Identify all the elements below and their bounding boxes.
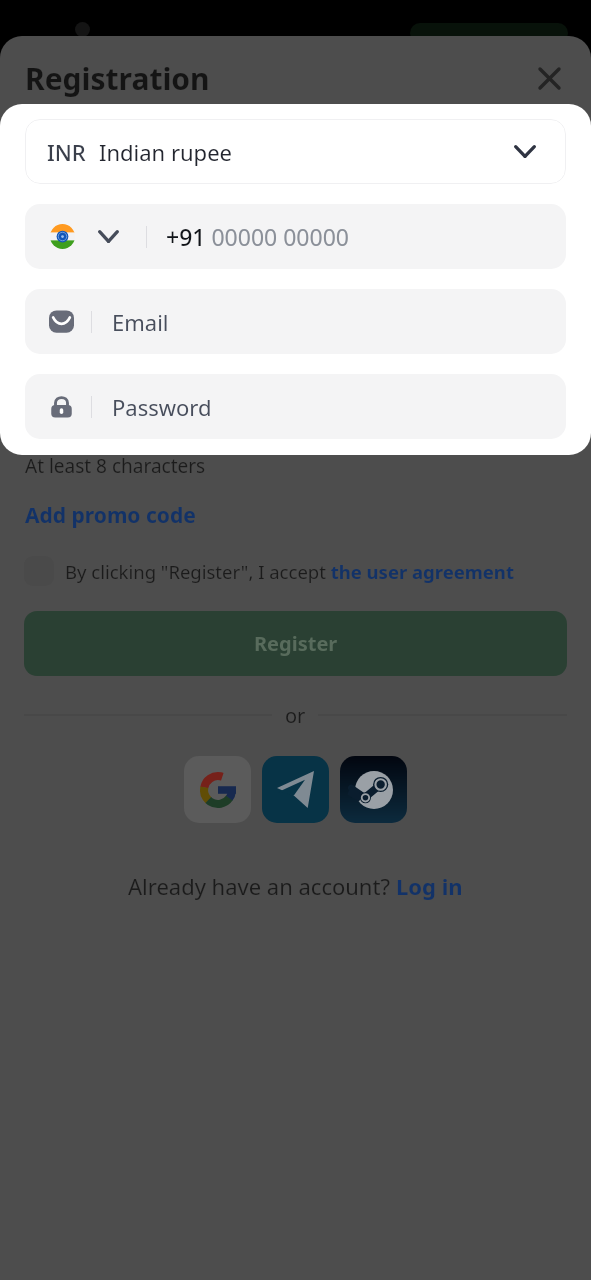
staticText: Email — [112, 307, 169, 337]
button[interactable]: Sign in with Telegram — [262, 756, 329, 823]
staticText: Password — [112, 392, 212, 422]
button[interactable]: Sign in with Steam — [340, 756, 407, 823]
button[interactable]: Email — [25, 289, 566, 354]
button[interactable]: Close — [527, 56, 571, 100]
button[interactable]: Password — [25, 374, 566, 439]
staticText: Indian rupee — [99, 137, 232, 167]
staticText: +91 00000 00000 — [166, 221, 349, 252]
button[interactable]: Register — [24, 611, 567, 676]
button[interactable]: INR — [25, 119, 566, 184]
staticText: INR — [47, 137, 86, 167]
staticText: Log in — [396, 871, 463, 901]
button[interactable]: +91 00000 00000 — [25, 204, 566, 269]
button[interactable]: Add promo code — [25, 501, 196, 530]
staticText: Register — [254, 630, 338, 657]
staticText: Already have an account? — [128, 871, 396, 901]
staticText: or — [285, 702, 306, 728]
staticText: Registration — [25, 58, 210, 99]
staticText: At least 8 characters — [25, 453, 206, 479]
staticText: By clicking "Register", I accept the use… — [65, 559, 514, 584]
button[interactable]: Sign in with Google — [184, 756, 251, 823]
staticText: Add promo code — [25, 501, 196, 530]
button[interactable]: Log in — [396, 871, 463, 901]
